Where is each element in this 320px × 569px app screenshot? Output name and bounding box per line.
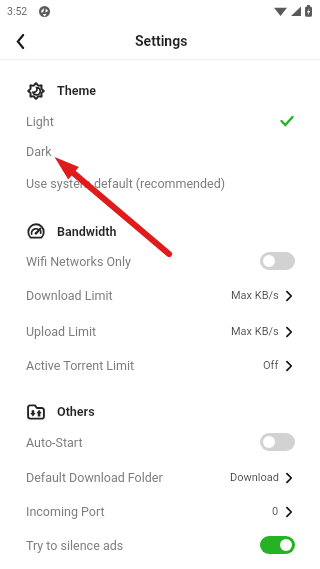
button[interactable]: Back — [7, 28, 33, 54]
staticText: Use system default (recommended) — [26, 176, 226, 191]
staticText: Max KB/s — [231, 325, 279, 338]
staticText: Wifi Networks Only — [26, 254, 131, 269]
staticText: Off — [263, 359, 279, 372]
staticText: Download Limit — [26, 288, 113, 303]
button[interactable]: Wifi Networks Only — [0, 246, 320, 276]
button[interactable]: Default Download Folder — [0, 462, 320, 492]
button[interactable]: Auto-Start — [0, 427, 320, 457]
button[interactable]: Incoming Port — [0, 496, 320, 526]
staticText: Upload Limit — [26, 324, 97, 339]
staticText: Theme — [57, 83, 97, 98]
staticText: Others — [57, 404, 95, 419]
staticText: 0 — [272, 505, 279, 518]
staticText: Settings — [135, 33, 188, 49]
staticText: Dark — [26, 144, 52, 159]
button[interactable]: Toggle off — [260, 252, 295, 270]
staticText: 3:52 — [7, 5, 28, 17]
button[interactable]: Download Limit — [0, 280, 320, 310]
staticText: Max KB/s — [231, 289, 279, 302]
button[interactable]: Try to silence ads — [0, 530, 320, 560]
staticText: Light — [26, 114, 54, 129]
staticText: Try to silence ads — [26, 538, 124, 553]
staticText: Incoming Port — [26, 504, 105, 519]
staticText: Auto-Start — [26, 435, 83, 450]
button[interactable]: Toggle off — [260, 433, 295, 451]
button[interactable]: Light — [0, 106, 320, 136]
staticText: Download — [230, 471, 279, 484]
staticText: Default Download Folder — [26, 470, 163, 485]
staticText: Active Torrent Limit — [26, 358, 135, 373]
button[interactable]: Dark — [0, 136, 320, 166]
button[interactable]: Active Torrent Limit — [0, 350, 320, 380]
button[interactable]: Upload Limit — [0, 316, 320, 346]
button[interactable]: Toggle on — [260, 536, 295, 554]
button[interactable]: Use system default (recommended) — [0, 168, 320, 198]
staticText: Bandwidth — [57, 224, 117, 239]
